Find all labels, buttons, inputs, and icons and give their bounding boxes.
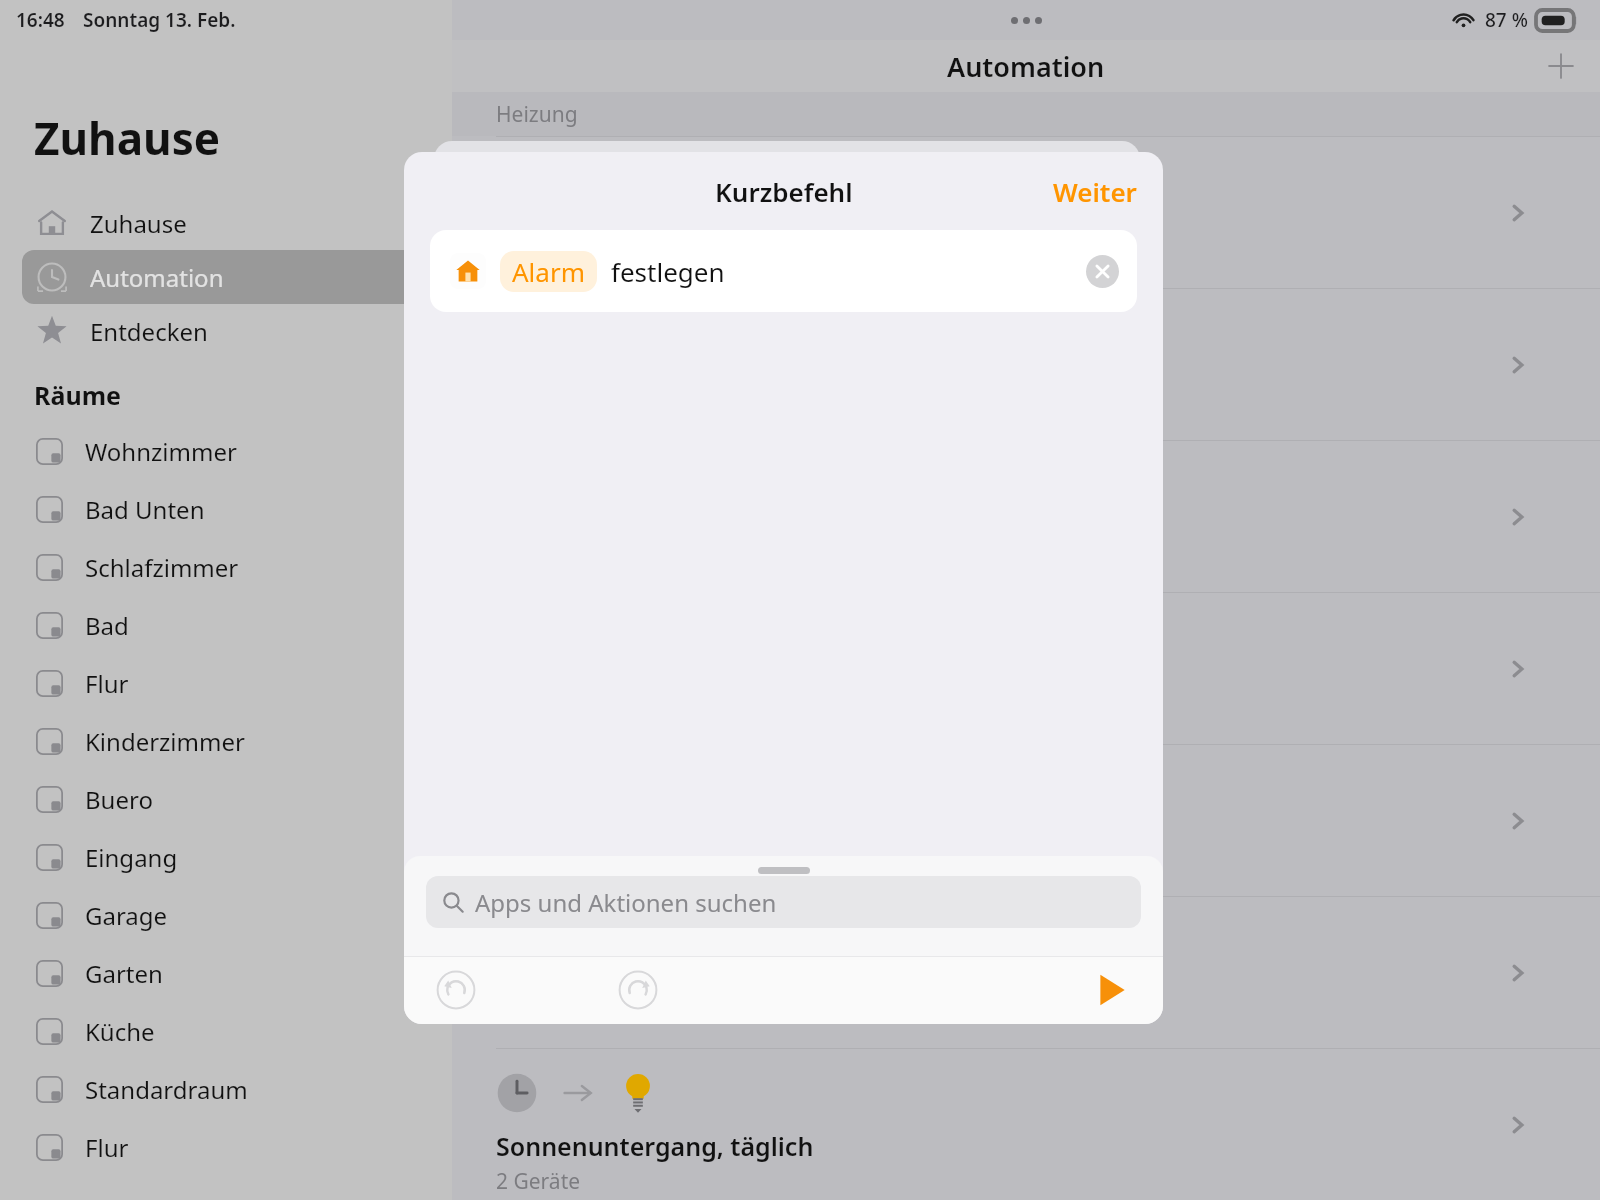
button[interactable]: Automation — [452, 137, 1600, 289]
button[interactable]: Sonnenuntergang, täglich — [452, 1049, 1600, 1200]
button[interactable]: Automation — [22, 250, 430, 304]
staticText: festlegen — [611, 254, 725, 289]
button[interactable]: Küche — [0, 1002, 452, 1060]
staticText: Flur — [85, 667, 129, 700]
staticText: 16:48 — [16, 7, 65, 33]
button[interactable]: Standardraum — [0, 1060, 452, 1118]
staticText: 87 % — [1485, 7, 1528, 33]
staticText: Schlafzimmer — [85, 551, 239, 584]
staticText: Kurzbefehl — [715, 174, 853, 209]
button[interactable]: Automation — [452, 441, 1600, 593]
staticText: Automation — [947, 48, 1105, 85]
staticText: Weiter — [1053, 174, 1137, 209]
staticText: Zuhause — [34, 108, 220, 168]
button[interactable]: Garage — [0, 886, 452, 944]
button[interactable]: Kinderzimmer — [0, 712, 452, 770]
button[interactable]: Flur — [0, 654, 452, 712]
button[interactable]: Bad Unten — [0, 480, 452, 538]
button[interactable]: Weiter — [1043, 168, 1147, 215]
button[interactable]: Flur — [0, 1118, 452, 1176]
button[interactable]: Automation — [452, 289, 1600, 441]
button[interactable]: Eingang — [0, 828, 452, 886]
staticText: Wohnzimmer — [85, 435, 237, 468]
button[interactable]: Alarm — [430, 230, 1137, 312]
staticText: Entdecken — [90, 315, 208, 348]
staticText: Räume — [34, 378, 121, 412]
staticText: Sonnenuntergang, täglich — [496, 1129, 814, 1163]
staticText: Bad — [85, 609, 129, 642]
staticText: Kinderzimmer — [85, 725, 245, 758]
button[interactable]: Löschen — [1086, 255, 1119, 288]
staticText: Flur — [85, 1131, 129, 1164]
staticText: Garage — [85, 899, 168, 932]
button[interactable]: Automation — [452, 897, 1600, 1049]
button[interactable]: Automation — [452, 593, 1600, 745]
button[interactable]: Wiederholen — [614, 966, 662, 1014]
staticText: Heizung — [496, 100, 578, 129]
staticText: Apps und Aktionen suchen — [475, 886, 777, 919]
button[interactable]: Zuhause — [22, 196, 430, 250]
staticText: Eingang — [85, 841, 178, 874]
staticText: 2 Geräte — [496, 1167, 581, 1196]
button[interactable]: Garten — [0, 944, 452, 1002]
button[interactable]: Rückgängig — [432, 966, 480, 1014]
staticText: Bad Unten — [85, 493, 205, 526]
button[interactable]: Buero — [0, 770, 452, 828]
staticText: Buero — [85, 783, 153, 816]
button[interactable]: Automation hinzufügen — [1538, 43, 1584, 89]
staticText: Alarm — [512, 254, 585, 289]
button[interactable]: Apps und Aktionen suchen — [426, 876, 1141, 928]
button[interactable]: Automation — [452, 745, 1600, 897]
button[interactable]: Bad — [0, 596, 452, 654]
staticText: Garten — [85, 957, 163, 990]
button[interactable]: Schlafzimmer — [0, 538, 452, 596]
staticText: Sonntag 13. Feb. — [83, 7, 236, 33]
staticText: Zuhause — [90, 207, 187, 240]
staticText: Küche — [85, 1015, 155, 1048]
button[interactable]: Ausführen — [1087, 966, 1135, 1014]
staticText: Standardraum — [85, 1073, 248, 1106]
staticText: Automation — [90, 261, 224, 294]
button[interactable]: Wohnzimmer — [0, 422, 452, 480]
button[interactable]: Entdecken — [22, 304, 430, 358]
